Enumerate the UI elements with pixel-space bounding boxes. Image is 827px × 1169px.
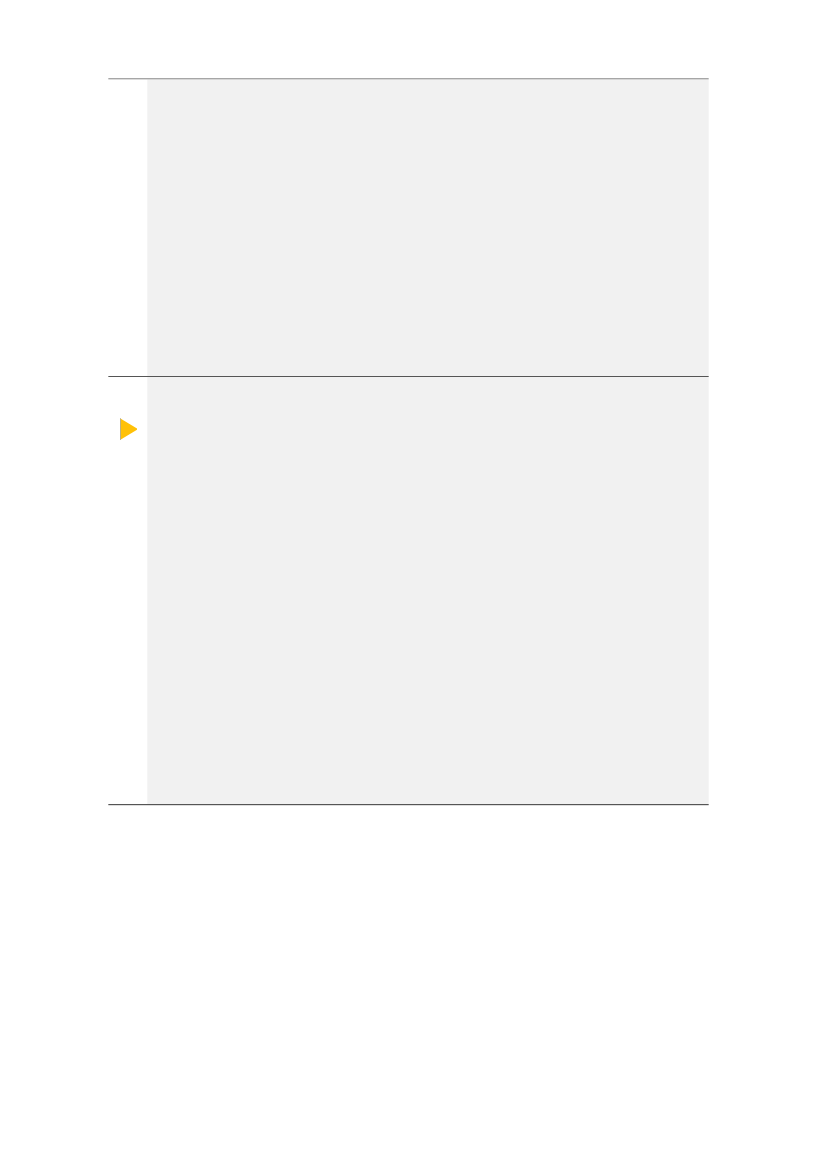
button[interactable]: Expand section xyxy=(110,410,148,448)
button[interactable]: Section two xyxy=(147,376,708,804)
